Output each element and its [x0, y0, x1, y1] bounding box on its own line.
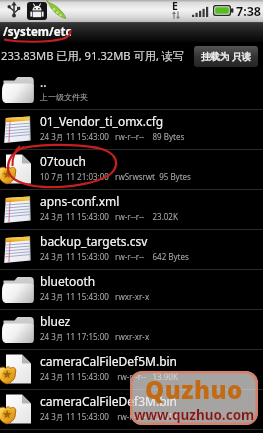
staticText: 01_Vendor_ti_omx.cfg	[40, 113, 164, 129]
staticText: 24 3月 11 15:43:00 rw-r--r-- 13.90K	[40, 371, 178, 382]
button[interactable]: 01_Vendor_ti_omx.cfg	[0, 110, 263, 149]
button[interactable]: cameraCalFileDef5M.bin	[0, 350, 263, 389]
button[interactable]: bluez	[0, 310, 263, 349]
button[interactable]: 07touch	[0, 150, 263, 189]
staticText: bluez	[40, 313, 71, 329]
staticText: apns-conf.xml	[40, 193, 120, 209]
staticText: 24 3月 11 17:15:00 rwxr-xr-x	[40, 331, 150, 342]
button[interactable]: 挂载为 只读	[194, 46, 258, 67]
staticText: 10 7月 11 21:03:00 rwSrwsrwt 95 Bytes	[40, 171, 191, 182]
staticText: Quzhuo	[145, 373, 243, 406]
staticText: 24 3月 11 15:43:00 rw-r--r-- 642 Bytes	[40, 251, 189, 262]
staticText: 挂载为 只读	[201, 50, 251, 63]
button[interactable]: ..	[0, 70, 263, 109]
staticText: www.quzhuo.com	[134, 406, 255, 423]
staticText: 24 3月 11 15:43:00 rwxr-xr-x	[40, 291, 150, 302]
staticText: /system/etc	[3, 24, 72, 40]
staticText: bluetooth	[40, 273, 96, 289]
staticText: cameraCalFileDef5M.bin	[40, 353, 178, 369]
staticText: 24 3月 11 15:43:00 rw-r--r-- 23.02K	[40, 211, 178, 222]
staticText: E	[172, 0, 178, 13]
staticText: 7:38	[236, 3, 261, 20]
button[interactable]: bluetooth	[0, 270, 263, 309]
staticText: 233.83MB 已用, 91.32MB 可用, 读写	[1, 48, 185, 63]
staticText: backup_targets.csv	[40, 233, 148, 249]
button[interactable]: cameraCalFileDef3M.bin	[0, 390, 263, 429]
staticText: cameraCalFileDef3M.bin	[40, 393, 178, 409]
button[interactable]: apns-conf.xml	[0, 190, 263, 229]
staticText: 上一级文件夹	[40, 92, 88, 102]
button[interactable]: backup_targets.csv	[0, 230, 263, 269]
staticText: 24 3月 11 15:43:00 rw-r--r-- 12.41K	[40, 411, 178, 422]
staticText: ..	[40, 74, 47, 90]
staticText: 24 3月 11 15:43:00 rw-r--r-- 89 Bytes	[40, 131, 185, 142]
staticText: 07touch	[40, 153, 86, 169]
